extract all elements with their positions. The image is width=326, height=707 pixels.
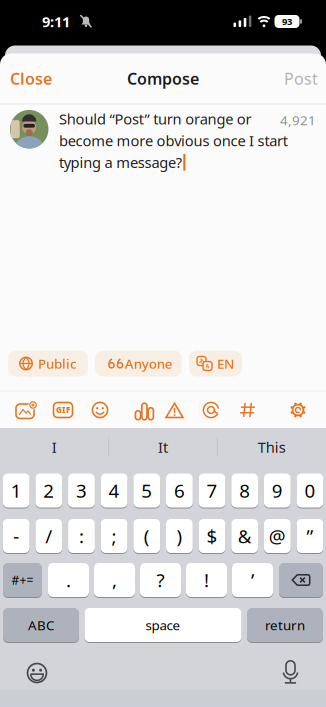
staticText: / [45, 524, 52, 548]
staticText: ’ [251, 568, 254, 592]
staticText: Should “Post” turn orange or [59, 109, 252, 128]
staticText: . [66, 568, 71, 592]
button[interactable]: 5 [133, 473, 160, 508]
button[interactable]: Add GIF [53, 402, 72, 417]
button[interactable]: Mention [202, 401, 219, 418]
staticText: 1 [11, 478, 22, 503]
staticText: EN [217, 355, 234, 372]
button[interactable]: : [68, 518, 95, 553]
button[interactable]: It [0, 0, 326, 707]
button[interactable]: Custom emoji [91, 401, 108, 418]
staticText: A [205, 362, 209, 370]
button[interactable]: ) [166, 518, 193, 553]
staticText: 9:11 [42, 12, 70, 31]
button[interactable]: Compose settings [288, 400, 307, 419]
button[interactable]: ABC [3, 607, 79, 642]
staticText: - [13, 524, 19, 548]
button[interactable]: , [94, 562, 135, 597]
button[interactable]: 8 [231, 473, 258, 508]
staticText: ( [144, 524, 150, 548]
button[interactable]: ! [186, 562, 227, 597]
staticText: , [112, 568, 117, 592]
button[interactable]: ’ [232, 562, 273, 597]
button[interactable]: - [3, 518, 30, 553]
staticText: ; [112, 524, 117, 548]
staticText: @ [269, 524, 286, 548]
staticText: $ [206, 524, 217, 548]
button[interactable]: Close [0, 0, 326, 707]
staticText: 2 [43, 478, 54, 503]
button[interactable]: & [231, 518, 258, 553]
staticText: Anyone [125, 355, 173, 372]
button[interactable]: Content warning [165, 402, 184, 419]
staticText: 3 [76, 478, 87, 503]
button[interactable]: 4 [101, 473, 127, 508]
staticText: 93 [282, 15, 292, 28]
staticText: GIF [56, 405, 70, 415]
staticText: 8 [239, 478, 250, 503]
staticText: It [158, 437, 168, 457]
button[interactable]: . [48, 562, 89, 597]
staticText: & [238, 524, 252, 548]
button[interactable]: ” [297, 518, 323, 553]
staticText: This [258, 437, 286, 457]
staticText: 4,921 [280, 111, 316, 129]
staticText: Post [284, 68, 318, 89]
staticText: Compose [127, 68, 199, 89]
button[interactable]: 7 [199, 473, 225, 508]
button[interactable]: Add poll [128, 401, 147, 419]
button[interactable]: 2 [35, 473, 62, 508]
staticText: Close [10, 68, 52, 89]
staticText: ” [306, 524, 313, 548]
staticText: 9 [272, 478, 283, 503]
staticText: ABC [28, 616, 54, 634]
button[interactable]: This [0, 0, 326, 707]
button[interactable]: Emoji [26, 662, 47, 683]
button[interactable]: @ [264, 518, 291, 553]
staticText: 7 [206, 478, 217, 503]
button[interactable]: 3 [68, 473, 95, 508]
staticText: typing a message? [59, 153, 182, 172]
staticText: : [79, 524, 84, 548]
staticText: become more obvious once I start [59, 131, 288, 150]
button[interactable]: Anyone [95, 350, 182, 376]
button[interactable]: ? [140, 562, 181, 597]
button[interactable]: 9 [264, 473, 291, 508]
button[interactable]: あ [189, 350, 242, 376]
staticText: あ [199, 358, 204, 364]
button[interactable]: I [0, 0, 326, 707]
button[interactable]: Dictate [282, 660, 298, 684]
button[interactable]: ; [101, 518, 127, 553]
button[interactable]: Post [0, 0, 326, 707]
staticText: 0 [304, 478, 315, 503]
button[interactable]: Add photo [16, 401, 36, 418]
staticText: 5 [141, 478, 152, 503]
staticText: 4 [109, 478, 120, 503]
button[interactable]: Hashtag [239, 402, 255, 418]
staticText: ! [204, 568, 209, 592]
button[interactable]: #+= [3, 562, 42, 597]
button[interactable]: return [247, 607, 323, 642]
staticText: Public [38, 355, 77, 372]
button[interactable]: ( [133, 518, 160, 553]
button[interactable]: $ [199, 518, 225, 553]
staticText: #+= [11, 572, 33, 588]
button[interactable]: 6 [166, 473, 193, 508]
staticText: ) [176, 524, 182, 548]
staticText: 6 [174, 478, 185, 503]
button[interactable]: space [84, 607, 241, 642]
staticText: return [265, 616, 305, 634]
button[interactable]: / [35, 518, 62, 553]
staticText: ? [156, 568, 164, 592]
button[interactable]: Public [8, 350, 88, 376]
staticText: space [145, 616, 180, 634]
button[interactable]: 0 [297, 473, 323, 508]
button[interactable]: Delete [279, 562, 323, 597]
staticText: I [52, 437, 57, 457]
button[interactable]: 1 [3, 473, 30, 508]
